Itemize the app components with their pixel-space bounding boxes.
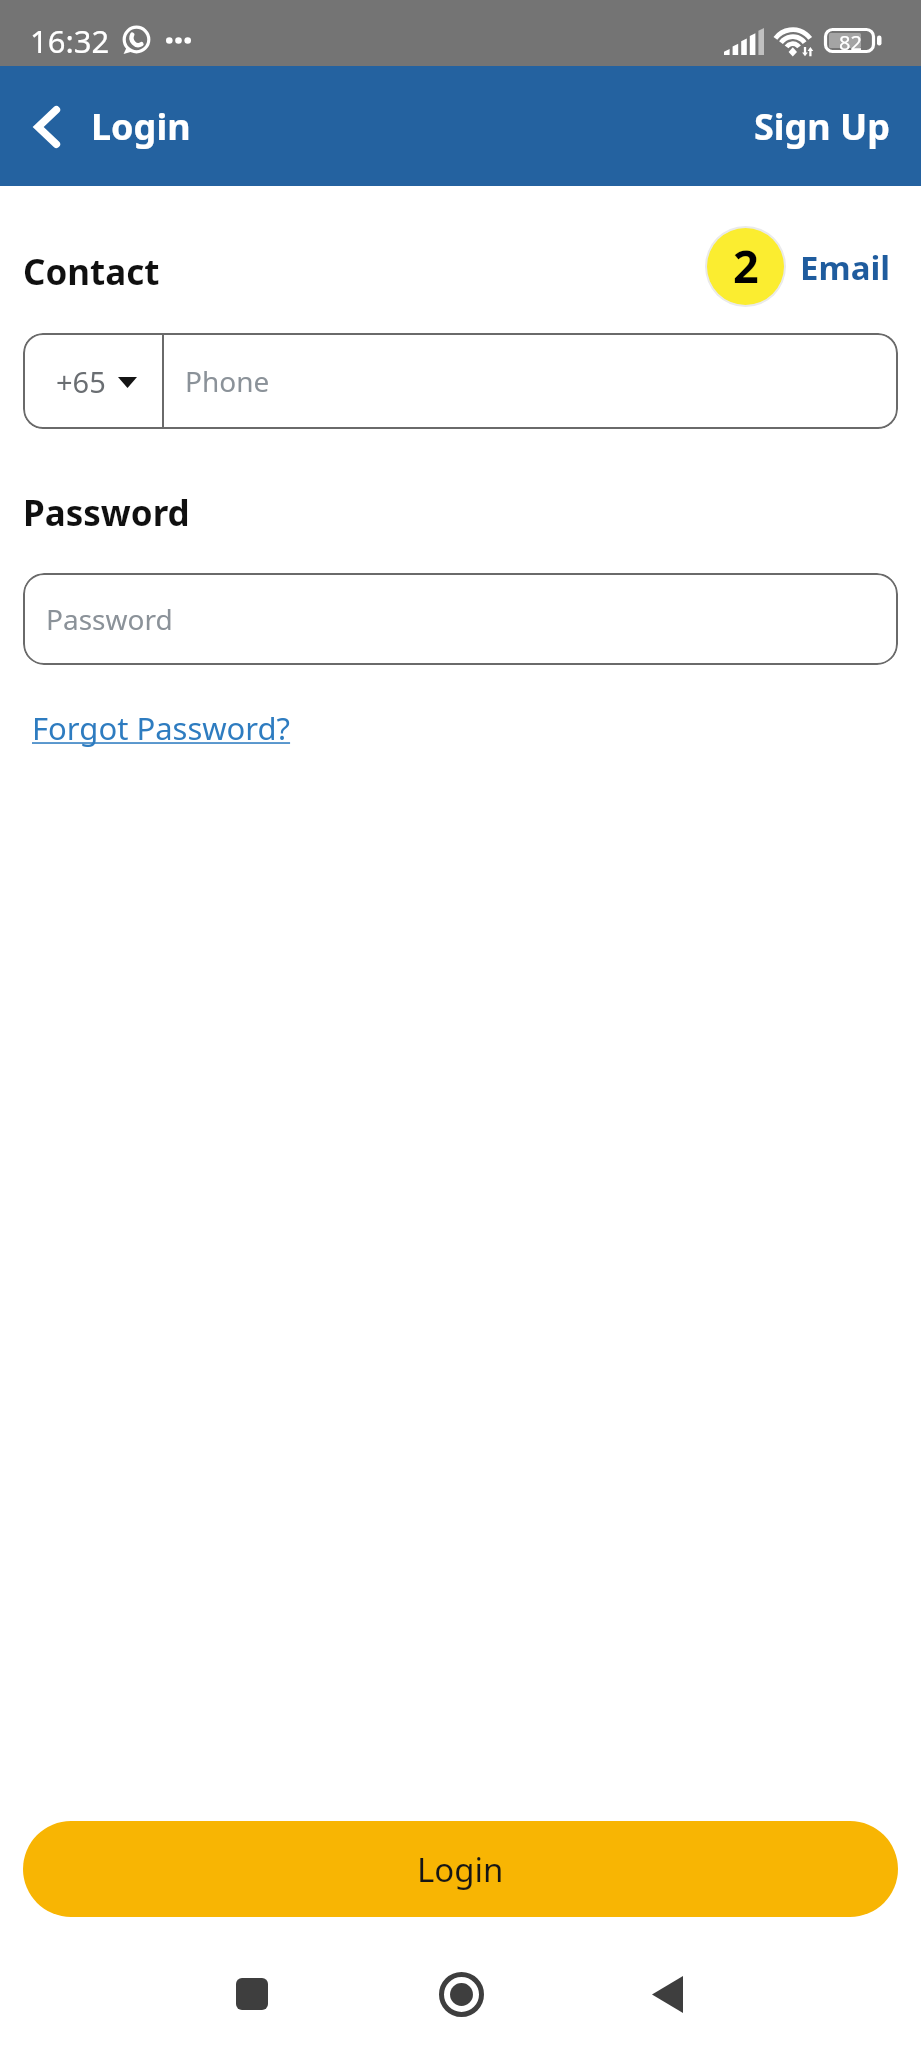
button[interactable]: Login	[23, 1821, 898, 1917]
button[interactable]: Recent apps	[216, 1958, 288, 2030]
button[interactable]: Password	[23, 573, 898, 665]
button[interactable]: Back	[631, 1958, 703, 2030]
staticText: Password	[23, 489, 190, 537]
staticText: Login	[91, 102, 191, 151]
staticText: +65	[56, 362, 106, 401]
staticText: 82	[839, 29, 862, 54]
staticText: Login	[417, 1847, 504, 1892]
staticText: 2	[733, 235, 759, 296]
staticText: Password	[46, 600, 173, 638]
staticText: Email	[800, 245, 891, 290]
other: Back	[34, 106, 60, 148]
button[interactable]: Home	[425, 1958, 497, 2030]
staticText: 16:32	[30, 20, 110, 62]
staticText: Phone	[185, 362, 270, 400]
button[interactable]: +65	[23, 333, 162, 429]
staticText: Contact	[23, 248, 160, 296]
button[interactable]: 2	[704, 226, 891, 307]
other: Select country code	[118, 377, 137, 388]
button[interactable]: Back	[0, 90, 207, 163]
staticText: Forgot Password?	[32, 707, 291, 749]
button[interactable]: Forgot Password?	[32, 707, 291, 749]
button[interactable]: Phone	[164, 333, 898, 429]
button[interactable]: Sign Up	[724, 88, 921, 165]
staticText: Sign Up	[754, 102, 891, 151]
